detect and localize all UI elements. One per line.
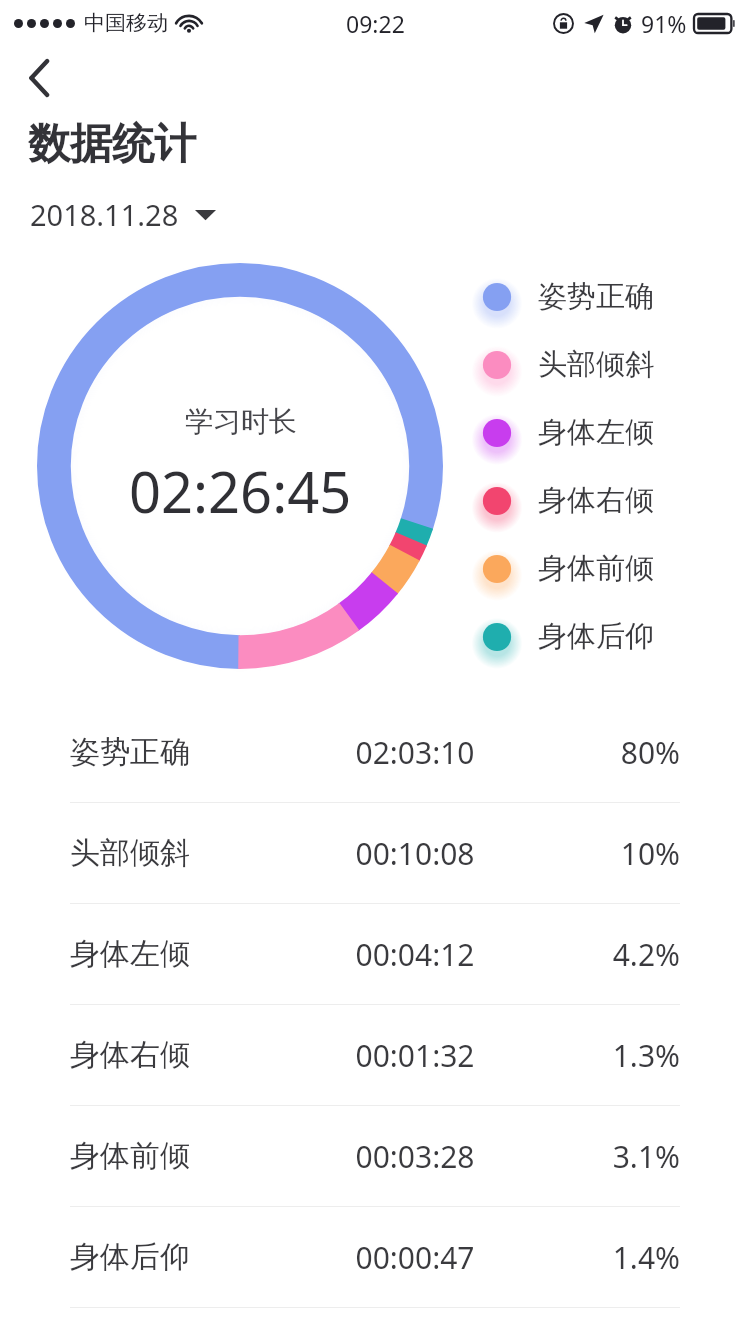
staticText: 身体前倾 bbox=[70, 1137, 265, 1175]
staticText: 02:26:45 bbox=[129, 453, 352, 529]
button[interactable]: 身体左倾 bbox=[0, 904, 750, 1004]
staticText: 00:01:32 bbox=[265, 1035, 565, 1076]
staticText: 2018.11.28 bbox=[30, 195, 179, 234]
staticText: 身体右倾 bbox=[538, 482, 654, 519]
staticText: 1.3% bbox=[565, 1035, 680, 1076]
staticText: 身体前倾 bbox=[538, 550, 654, 587]
button[interactable]: 身体前倾 bbox=[0, 1106, 750, 1206]
button[interactable]: 头部倾斜 bbox=[0, 803, 750, 903]
button[interactable]: 身体后仰 bbox=[480, 618, 742, 655]
staticText: 数据统计 bbox=[28, 118, 196, 171]
staticText: 00:04:12 bbox=[265, 934, 565, 975]
staticText: 身体后仰 bbox=[538, 618, 654, 655]
button[interactable]: 姿势正确 bbox=[0, 702, 750, 802]
staticText: 09:22 bbox=[346, 8, 405, 39]
staticText: 10% bbox=[565, 833, 680, 874]
staticText: 身体左倾 bbox=[70, 935, 265, 973]
staticText: 头部倾斜 bbox=[538, 346, 654, 383]
button[interactable]: 身体右倾 bbox=[0, 1005, 750, 1105]
button[interactable]: 身体右倾 bbox=[480, 482, 742, 519]
staticText: 00:03:28 bbox=[265, 1136, 565, 1177]
staticText: 1.4% bbox=[565, 1237, 680, 1278]
staticText: 身体左倾 bbox=[538, 414, 654, 451]
staticText: 身体右倾 bbox=[70, 1036, 265, 1074]
staticText: 中国移动 bbox=[84, 10, 168, 36]
staticText: 学习时长 bbox=[185, 404, 297, 439]
staticText: 3.1% bbox=[565, 1136, 680, 1177]
staticText: 00:00:47 bbox=[265, 1237, 565, 1278]
staticText: 00:10:08 bbox=[265, 833, 565, 874]
button[interactable]: 2018.11.28 bbox=[26, 191, 220, 238]
button[interactable]: 姿势正确 bbox=[480, 278, 742, 315]
staticText: 91% bbox=[641, 8, 687, 39]
staticText: 80% bbox=[565, 732, 680, 773]
staticText: 姿势正确 bbox=[70, 733, 265, 771]
button[interactable]: 身体后仰 bbox=[0, 1207, 750, 1307]
button[interactable]: 身体前倾 bbox=[480, 550, 742, 587]
staticText: 02:03:10 bbox=[265, 732, 565, 773]
button[interactable]: 身体左倾 bbox=[480, 414, 742, 451]
button[interactable]: Back bbox=[0, 46, 80, 110]
staticText: 姿势正确 bbox=[538, 278, 654, 315]
button[interactable]: 头部倾斜 bbox=[480, 346, 742, 383]
staticText: 头部倾斜 bbox=[70, 834, 265, 872]
staticText: 4.2% bbox=[565, 934, 680, 975]
staticText: 身体后仰 bbox=[70, 1238, 265, 1276]
